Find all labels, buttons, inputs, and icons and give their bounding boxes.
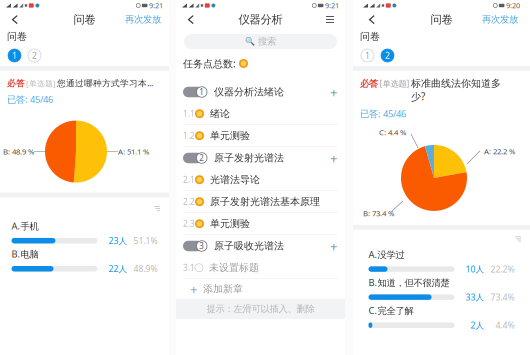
staticText: 再次发放 — [125, 14, 161, 25]
staticText: 3 — [199, 241, 204, 251]
staticText: 73.4% — [490, 291, 514, 303]
staticText: 2.1 — [183, 174, 195, 185]
staticText: 绪论 — [210, 107, 230, 120]
staticText: 已答: 45/46 — [7, 93, 53, 105]
staticText: 再次发放 — [482, 14, 518, 25]
staticText: 2.2 — [183, 196, 195, 207]
staticText: 9:21 — [325, 0, 339, 10]
staticText: 22人 — [108, 263, 127, 275]
staticText: 2 — [199, 153, 204, 163]
staticText: 光谱法导论 — [210, 173, 260, 186]
staticText: 原子发射光谱法基本原理 — [210, 195, 320, 208]
staticText: 仪器分析 — [238, 12, 282, 27]
staticText: B.电脑 — [11, 248, 38, 260]
staticText: B.知道，但不很清楚 — [368, 276, 449, 289]
staticText: 1 — [199, 87, 204, 97]
button[interactable]: Menu — [319, 11, 341, 28]
button[interactable]: 2.2 — [176, 191, 345, 213]
staticText: 2 — [32, 50, 37, 61]
staticText: 23人 — [108, 235, 127, 247]
staticText: [单选题] — [379, 78, 409, 89]
button[interactable]: 1 — [7, 48, 22, 63]
button[interactable]: 2 — [27, 48, 42, 63]
staticText: C: 4.4 % — [379, 127, 406, 137]
staticText: 原子吸收光谱法 — [214, 240, 284, 252]
staticText: 问卷 — [430, 12, 452, 27]
staticText: A.手机 — [11, 219, 38, 232]
staticText: 3.1 — [183, 262, 195, 273]
button[interactable]: + — [176, 279, 345, 299]
button[interactable]: Sort — [152, 204, 162, 213]
staticText: B: 73.4 % — [363, 208, 394, 218]
staticText: [单选题] — [26, 78, 56, 88]
staticText: 单元测验 — [210, 129, 250, 142]
staticText: B: 48.9 % — [3, 146, 34, 157]
staticText: 1.2 — [183, 130, 195, 141]
staticText: 任务点总数: — [183, 57, 236, 70]
button[interactable]: Back — [361, 11, 383, 28]
staticText: + — [190, 280, 198, 298]
button[interactable]: 1 — [360, 48, 375, 63]
staticText: 原子发射光谱法 — [214, 152, 284, 164]
button[interactable]: 2.1 — [176, 169, 345, 191]
button[interactable]: 再次发放 — [478, 11, 522, 28]
button[interactable]: 3 — [176, 235, 345, 257]
button[interactable]: 再次发放 — [121, 11, 165, 28]
staticText: 2 — [385, 50, 390, 61]
staticText: 2.3 — [183, 218, 195, 229]
button[interactable]: 2 — [176, 147, 345, 169]
staticText: 33人 — [465, 291, 484, 303]
staticText: 10人 — [465, 263, 484, 275]
staticText: 9:21 — [149, 0, 163, 10]
button[interactable]: Sort — [513, 234, 523, 243]
staticText: 未设置标题 — [209, 261, 259, 274]
staticText: 1 — [365, 50, 370, 61]
staticText: 问卷 — [360, 30, 380, 43]
button[interactable]: 2.3 — [176, 213, 345, 235]
button[interactable]: Back — [4, 11, 26, 28]
button[interactable]: 🔍 — [184, 34, 337, 49]
staticText: 搜索 — [258, 36, 276, 47]
staticText: 您通过哪种方式学习本课程? — [57, 77, 161, 89]
button[interactable]: 1 — [176, 81, 345, 103]
staticText: + — [330, 237, 338, 255]
staticText: + — [330, 149, 338, 167]
staticText: 问卷 — [7, 30, 27, 43]
staticText: A: 51.1 % — [118, 146, 149, 157]
staticText: 标准曲线法你知道多少? — [411, 77, 501, 103]
button[interactable]: 1.2 — [176, 125, 345, 147]
button[interactable]: Back — [180, 11, 202, 28]
button[interactable]: 3.1 — [176, 257, 345, 279]
staticText: 1.1 — [183, 108, 195, 119]
staticText: 已答: 45/46 — [360, 107, 406, 120]
staticText: 添加新章 — [203, 283, 243, 295]
staticText: 问卷 — [73, 12, 95, 27]
staticText: 9:20 — [506, 0, 520, 10]
staticText: 必答 — [7, 78, 25, 89]
button[interactable]: 2 — [380, 48, 395, 63]
staticText: 🔍 — [245, 37, 255, 46]
staticText: A: 22.2 % — [484, 146, 515, 156]
staticText: 必答 — [360, 78, 378, 89]
staticText: 提示：左滑可以插入、删除 — [206, 303, 314, 315]
staticText: 51.1% — [133, 235, 157, 247]
staticText: + — [330, 83, 338, 101]
staticText: 48.9% — [133, 263, 157, 275]
staticText: 4.4% — [495, 319, 514, 331]
staticText: 1 — [12, 50, 17, 61]
staticText: 2人 — [470, 319, 484, 331]
staticText: 22.2% — [490, 263, 514, 275]
staticText: 仪器分析法绪论 — [214, 86, 284, 98]
button[interactable]: 1.1 — [176, 103, 345, 125]
staticText: 单元测验 — [210, 217, 250, 230]
staticText: C.完全了解 — [368, 304, 413, 317]
staticText: A.没学过 — [368, 248, 404, 261]
